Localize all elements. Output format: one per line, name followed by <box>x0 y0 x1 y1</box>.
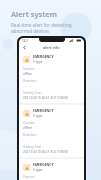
staticText: 2021.9.20 10:20:21 8:21:7:00:00 <box>23 150 68 154</box>
staticText: Starting Time : <box>23 91 43 95</box>
staticText: Content : <box>23 121 36 125</box>
staticText: Alert system <box>11 9 57 19</box>
button[interactable]: EMERGENCY <box>19 51 84 103</box>
button[interactable]: Back <box>21 44 27 50</box>
staticText: EMERGENCY <box>33 162 54 167</box>
staticText: alert info <box>43 45 60 50</box>
staticText: 2021.9.20 10:20:21 8:21:7:00:00 <box>23 96 68 100</box>
staticText: Detection : <box>23 133 38 137</box>
staticText: EMERGENCY <box>33 108 54 113</box>
staticText: Content : <box>23 67 36 71</box>
staticText: Content : <box>23 175 36 179</box>
staticText: offline <box>23 72 32 76</box>
staticText: - - <box>23 138 26 142</box>
staticText: offline <box>23 126 32 130</box>
staticText: 14:1 <box>22 39 29 43</box>
staticText: EMERGENCY <box>33 54 54 59</box>
staticText: - - <box>23 84 26 88</box>
staticText: Detection : <box>23 79 38 83</box>
staticText: Trigger <box>33 60 43 64</box>
staticText: Trigger <box>33 114 43 118</box>
button[interactable]: EMERGENCY <box>19 159 84 180</box>
staticText: Starting Time : <box>23 145 43 149</box>
staticText: Real-time alert for detecting abnormal d… <box>11 22 72 34</box>
button[interactable]: EMERGENCY <box>19 105 84 157</box>
staticText: Trigger <box>33 168 43 172</box>
